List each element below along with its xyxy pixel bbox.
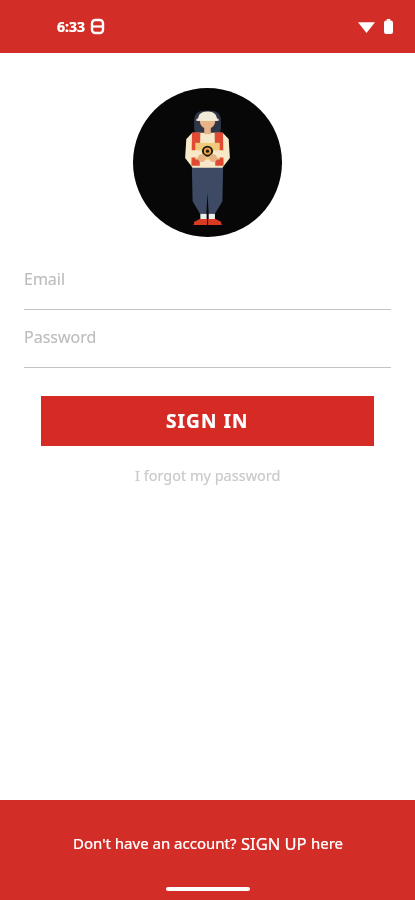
button[interactable]: Email [0,268,415,310]
staticText: here [307,833,343,853]
other: Profile avatar [133,88,282,237]
button[interactable]: I forgot my password [127,461,289,489]
staticText: SIGN UP [241,832,307,854]
staticText: Password [24,326,97,348]
button[interactable]: SIGN IN [41,396,374,446]
staticText: Email [24,268,66,290]
staticText: Don't have an account? [73,833,241,853]
staticText: 6:33 [57,17,85,36]
button[interactable]: Password [0,326,415,368]
button[interactable]: Don't have an account? [0,800,415,900]
staticText: I forgot my password [135,465,281,485]
staticText: SIGN IN [166,408,249,434]
